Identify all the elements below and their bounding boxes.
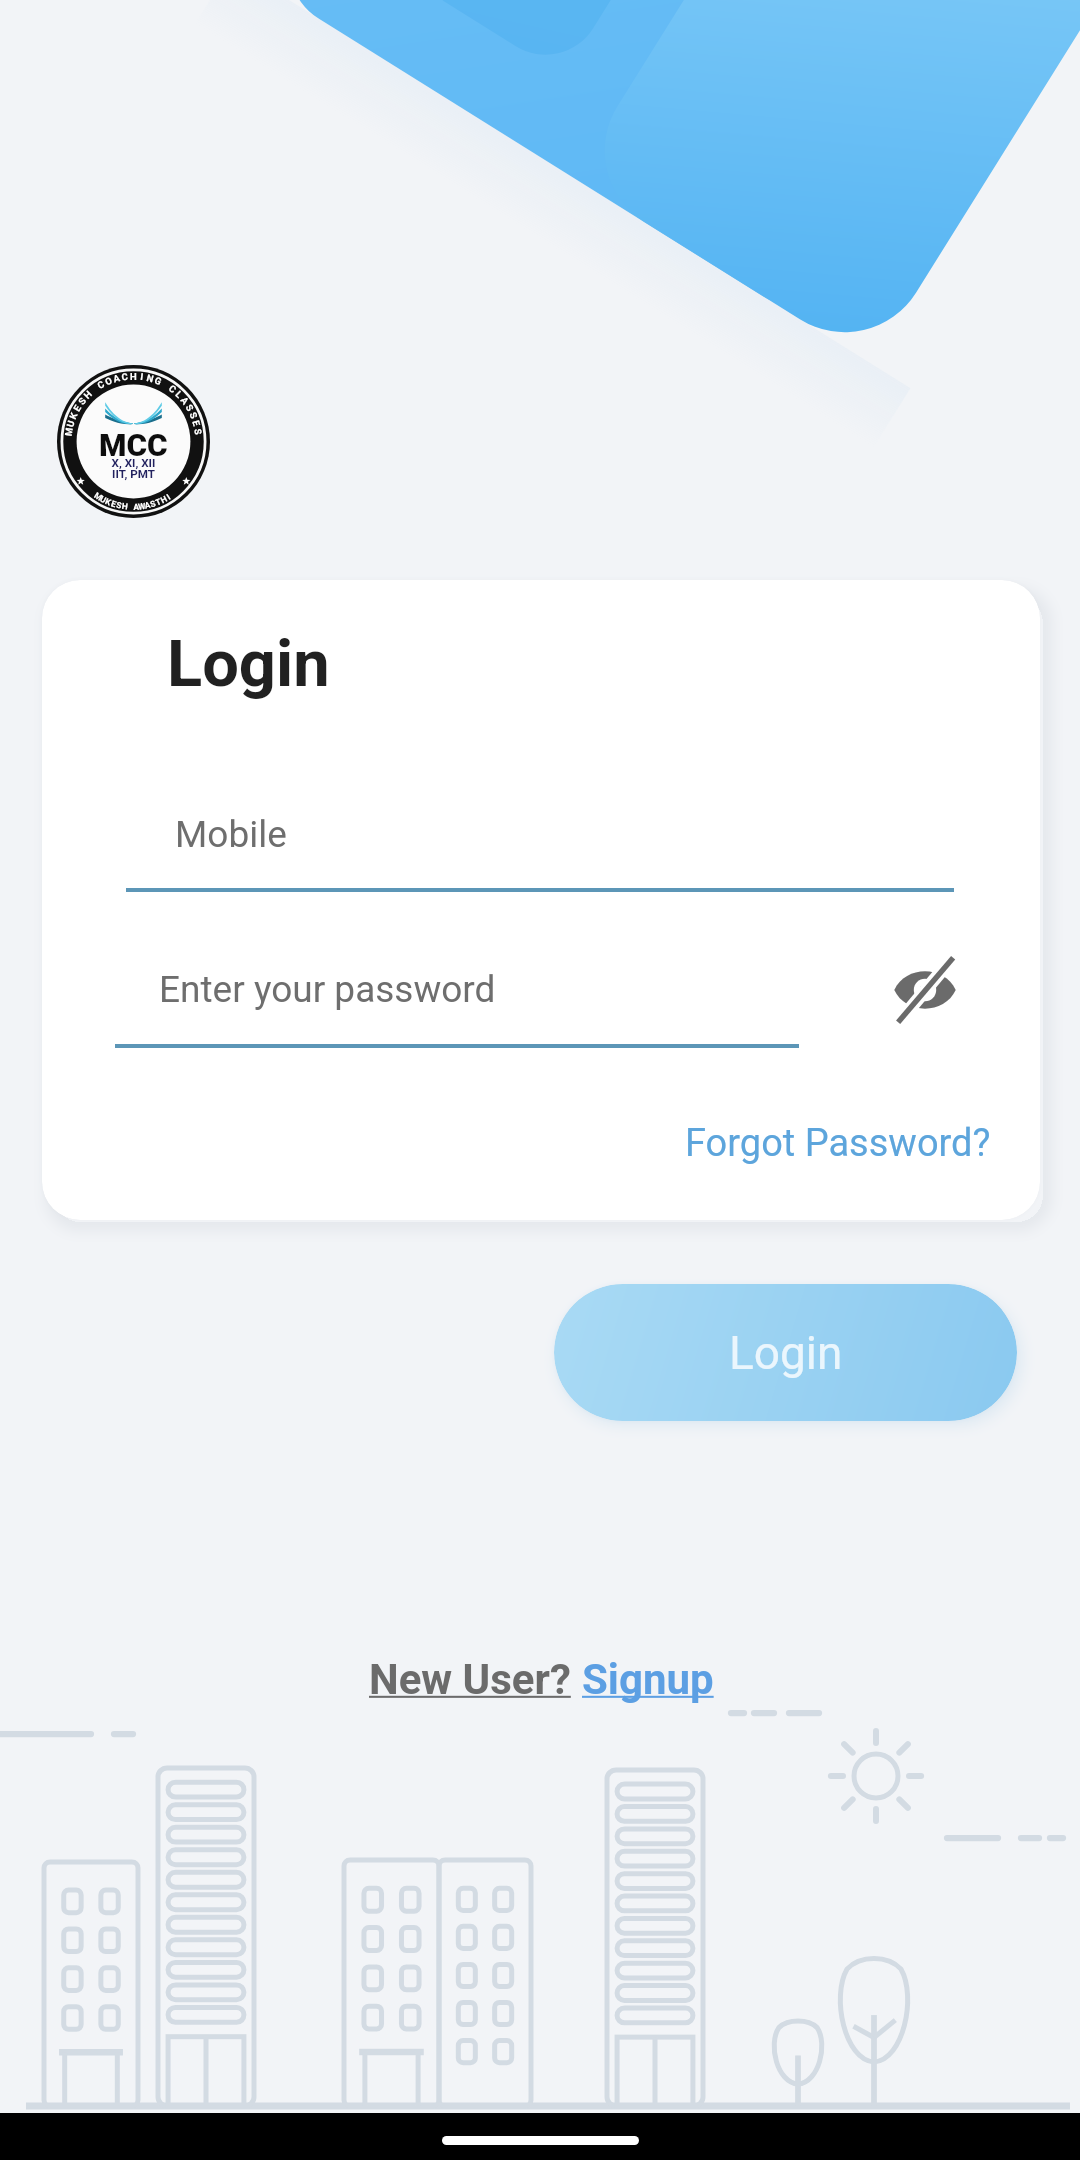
- staticText: Enter your password: [159, 968, 496, 1011]
- staticText: Signup: [582, 1655, 714, 1704]
- staticText: Forgot Password?: [685, 1121, 991, 1166]
- staticText: Login: [729, 1326, 843, 1380]
- staticText: Mobile: [175, 813, 287, 856]
- button[interactable]: Enter your password: [115, 954, 799, 1048]
- button[interactable]: Mobile: [126, 800, 954, 892]
- staticText: New User?: [369, 1655, 582, 1704]
- button[interactable]: Signup: [582, 1639, 728, 1720]
- button[interactable]: Show password: [862, 927, 988, 1053]
- staticText: Login: [167, 626, 330, 702]
- button[interactable]: Login: [554, 1284, 1017, 1421]
- button[interactable]: Forgot Password?: [669, 1107, 1007, 1180]
